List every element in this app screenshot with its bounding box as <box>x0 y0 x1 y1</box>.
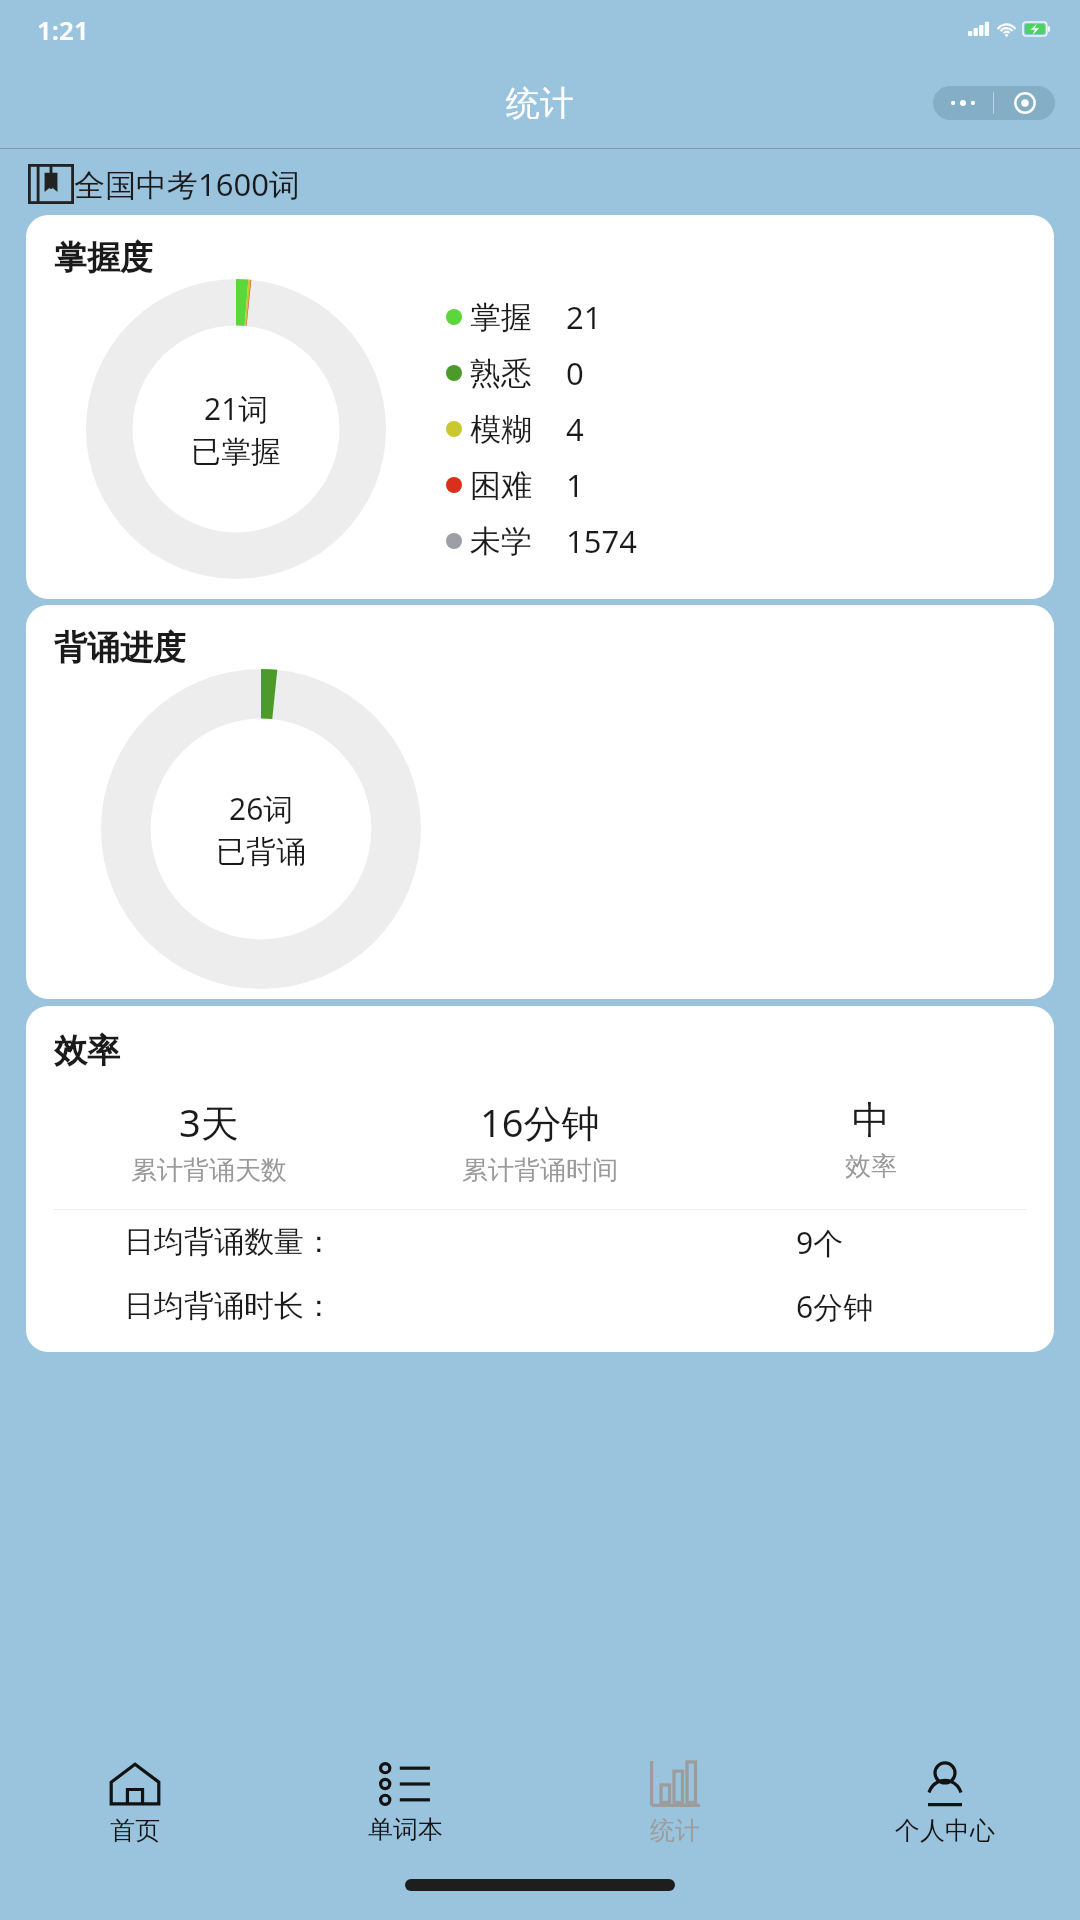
staticText: 掌握 <box>470 298 532 337</box>
button[interactable]: 3天 <box>44 1096 374 1187</box>
staticText: 日均背诵时长： <box>124 1287 334 1325</box>
staticText: 已背诵 <box>216 833 306 871</box>
staticText: 未学 <box>470 522 532 561</box>
staticText: 单词本 <box>368 1814 443 1845</box>
staticText: 背诵进度 <box>54 627 186 669</box>
staticText: 熟悉 <box>470 354 532 393</box>
staticText: 16分钟 <box>480 1096 600 1148</box>
staticText: 统计 <box>650 1815 700 1846</box>
staticText: 21 <box>566 296 602 338</box>
staticText: 0 <box>566 352 584 394</box>
button[interactable]: 熟悉 <box>446 345 1044 401</box>
button[interactable]: 首页 <box>0 1744 270 1862</box>
button[interactable]: 个人中心 <box>810 1744 1080 1862</box>
staticText: 21词 <box>204 388 269 429</box>
staticText: 3天 <box>179 1096 239 1148</box>
staticText: 效率 <box>845 1150 897 1183</box>
staticText: 累计背诵天数 <box>131 1154 287 1187</box>
button[interactable]: 16分钟 <box>374 1096 705 1187</box>
staticText: 26词 <box>229 788 294 829</box>
button[interactable]: Menu and close <box>933 86 1055 120</box>
staticText: 效率 <box>54 1030 120 1072</box>
button[interactable]: 单词本 <box>270 1744 540 1862</box>
staticText: 9个 <box>796 1222 844 1263</box>
staticText: 掌握度 <box>54 237 153 279</box>
staticText: 1 <box>566 464 584 506</box>
staticText: 1574 <box>566 520 637 562</box>
button[interactable]: 中 <box>705 1096 1036 1183</box>
staticText: 6分钟 <box>796 1286 874 1327</box>
staticText: 累计背诵时间 <box>462 1154 618 1187</box>
button[interactable]: 未学 <box>446 513 1044 569</box>
staticText: 中 <box>852 1096 890 1144</box>
staticText: 全国中考1600词 <box>74 163 300 205</box>
staticText: 4 <box>566 408 584 450</box>
button[interactable]: 掌握 <box>446 289 1044 345</box>
button[interactable]: 模糊 <box>446 401 1044 457</box>
staticText: 模糊 <box>470 410 532 449</box>
staticText: 个人中心 <box>895 1815 995 1846</box>
staticText: 日均背诵数量： <box>124 1223 334 1261</box>
button[interactable]: 统计 <box>540 1744 810 1862</box>
staticText: 已掌握 <box>191 433 281 471</box>
staticText: 统计 <box>506 82 574 125</box>
staticText: 首页 <box>110 1815 160 1846</box>
button[interactable]: 困难 <box>446 457 1044 513</box>
staticText: 1:21 <box>37 12 89 47</box>
staticText: 困难 <box>470 466 532 505</box>
